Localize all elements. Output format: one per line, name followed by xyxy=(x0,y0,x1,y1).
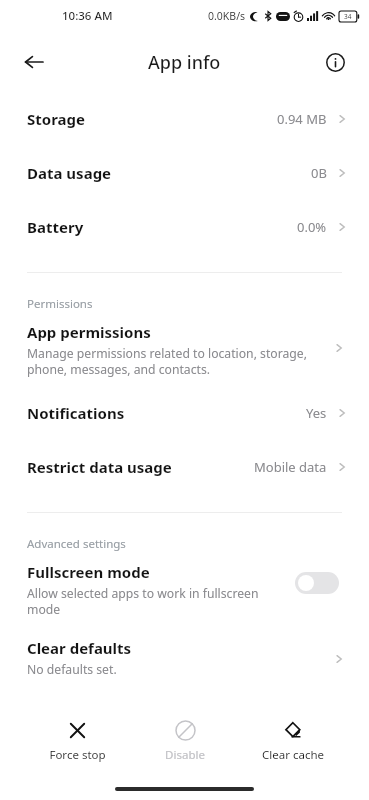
staticText: Disable xyxy=(165,747,205,763)
button[interactable]: Data usage xyxy=(0,146,369,200)
staticText: Yes xyxy=(306,404,327,422)
button[interactable]: App permissions xyxy=(0,318,369,386)
staticText: Fullscreen mode xyxy=(27,562,150,582)
button[interactable]: Fullscreen mode xyxy=(0,558,369,626)
button[interactable]: App details xyxy=(315,42,355,82)
staticText: Battery xyxy=(27,217,84,237)
staticText: Mobile data xyxy=(254,458,327,476)
staticText: 0.94 MB xyxy=(277,110,327,128)
staticText: 0.0% xyxy=(297,218,327,236)
button[interactable]: Force stop xyxy=(34,718,120,765)
staticText: 0.0KB/s xyxy=(208,9,246,23)
staticText: Data usage xyxy=(27,163,112,183)
staticText: No defaults set. xyxy=(27,661,117,678)
button[interactable]: Disable xyxy=(142,718,228,765)
staticText: Manage permissions related to location, … xyxy=(27,345,307,377)
button[interactable]: Storage xyxy=(0,92,369,146)
staticText: App info xyxy=(148,50,221,75)
button[interactable]: Back xyxy=(14,42,54,82)
button[interactable]: Restrict data usage xyxy=(0,440,369,494)
staticText: 34 xyxy=(344,12,352,21)
button[interactable]: Battery xyxy=(0,200,369,254)
button[interactable]: Notifications xyxy=(0,386,369,440)
staticText: Clear defaults xyxy=(27,638,132,658)
staticText: Allow selected apps to work in fullscree… xyxy=(27,585,259,617)
staticText: Storage xyxy=(27,109,85,129)
staticText: Notifications xyxy=(27,403,125,423)
button[interactable]: Clear cache xyxy=(250,718,336,765)
staticText: Advanced settings xyxy=(27,536,126,552)
button[interactable]: Clear defaults xyxy=(0,632,369,686)
staticText: 10:36 AM xyxy=(62,8,113,24)
staticText: 0B xyxy=(311,164,327,182)
staticText: App permissions xyxy=(27,322,151,342)
staticText: Permissions xyxy=(27,296,93,312)
staticText: Force stop xyxy=(49,747,106,763)
button[interactable]: Fullscreen mode toggle xyxy=(295,572,339,594)
staticText: Clear cache xyxy=(262,747,324,763)
staticText: Restrict data usage xyxy=(27,457,172,477)
